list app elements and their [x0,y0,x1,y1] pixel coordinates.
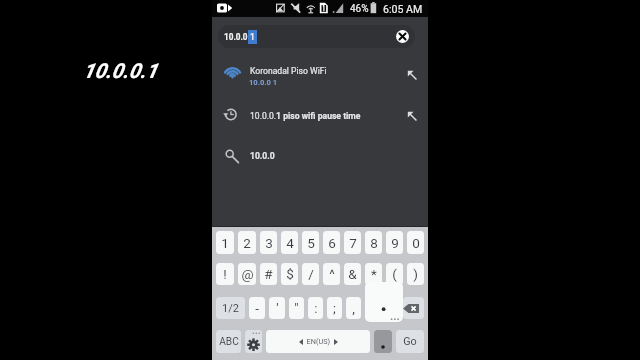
staticText: 46% [350,3,369,15]
button[interactable]: , [346,297,361,319]
staticText: ' [276,300,279,316]
staticText: * [371,266,377,282]
button[interactable]: ' [269,297,285,319]
button[interactable]: ^ [323,263,340,285]
staticText: ^ [329,266,335,282]
button[interactable]: 5 [302,231,319,254]
button[interactable]: 8 [365,231,382,254]
button[interactable]: / [302,263,319,285]
button[interactable]: * [365,263,382,285]
button[interactable]: @ [238,263,256,285]
staticText: 9 [391,235,399,251]
staticText: 10.0.0 [250,151,275,161]
button[interactable]: 10.0.0.1 piso wifi pause time [212,100,428,131]
staticText: 5 [307,235,315,251]
staticText: / [308,266,314,282]
button[interactable]: 4 [281,231,298,254]
button[interactable]: . [384,297,399,319]
staticText: EN(US) [303,337,334,346]
staticText: 10.0.0. [224,32,250,42]
button[interactable]: ) [407,263,424,285]
button[interactable]: Use this suggestion [407,70,417,80]
staticText: 1 [221,235,229,251]
staticText: & [348,266,357,282]
staticText: : [314,300,318,316]
staticText: 10.0.0.1 [83,59,158,83]
button[interactable]: ; [327,297,342,319]
button[interactable]: 0 [407,231,424,254]
button[interactable]: 2 [238,231,256,254]
button[interactable]: 6 [323,231,340,254]
staticText: - [255,300,259,316]
button[interactable] [374,330,392,353]
button[interactable]: 10.0.0 [212,140,428,171]
button[interactable]: ABC [216,330,241,353]
button[interactable]: Space, English US [266,330,370,353]
staticText: ; [333,300,336,316]
button[interactable]: ! [216,263,234,285]
staticText: " [294,300,299,316]
staticText: , [352,300,355,316]
button[interactable]: " [289,297,304,319]
staticText: 6 [328,235,336,251]
staticText: 6:05 AM [383,3,423,15]
button[interactable]: 1/2 [216,297,245,319]
staticText: 4 [286,235,294,251]
button[interactable]: Keyboard settings [245,330,262,353]
staticText: 7 [349,235,357,251]
staticText: 1 [250,32,255,42]
button[interactable]: Use this suggestion [407,111,417,121]
staticText: @ [241,266,254,282]
staticText: ) [413,266,418,282]
staticText: 1/2 [222,302,239,315]
button[interactable]: 9 [386,231,403,254]
button[interactable]: # [260,263,277,285]
button[interactable]: 10.0.0. [218,25,415,48]
staticText: 10.0.0 1 [249,78,278,87]
button[interactable]: ( [386,263,403,285]
staticText: # [264,266,273,282]
button[interactable]: 1 [216,231,234,254]
button[interactable]: - [249,297,265,319]
staticText: Go [403,335,417,348]
button[interactable]: 7 [344,231,361,254]
staticText: 8 [370,235,378,251]
button[interactable]: 3 [260,231,277,254]
staticText: 3 [265,235,273,251]
staticText: 0 [412,235,420,251]
staticText: 10.0.0.1 piso wifi pause time [250,111,361,121]
staticText: $ [286,266,294,282]
button[interactable]: Clear search [396,30,409,43]
staticText: ! [223,266,227,282]
button[interactable]: $ [281,263,298,285]
button[interactable]: & [344,263,361,285]
button[interactable]: Go [396,330,424,353]
staticText: ABC [219,336,239,348]
staticText: Koronadal Piso WiFi [250,66,327,76]
staticText: 2 [243,235,251,251]
button[interactable]: Koronadal Piso WiFi [212,57,428,95]
button[interactable]: : [308,297,323,319]
staticText: ( [392,266,397,282]
button[interactable]: Backspace [403,297,424,319]
